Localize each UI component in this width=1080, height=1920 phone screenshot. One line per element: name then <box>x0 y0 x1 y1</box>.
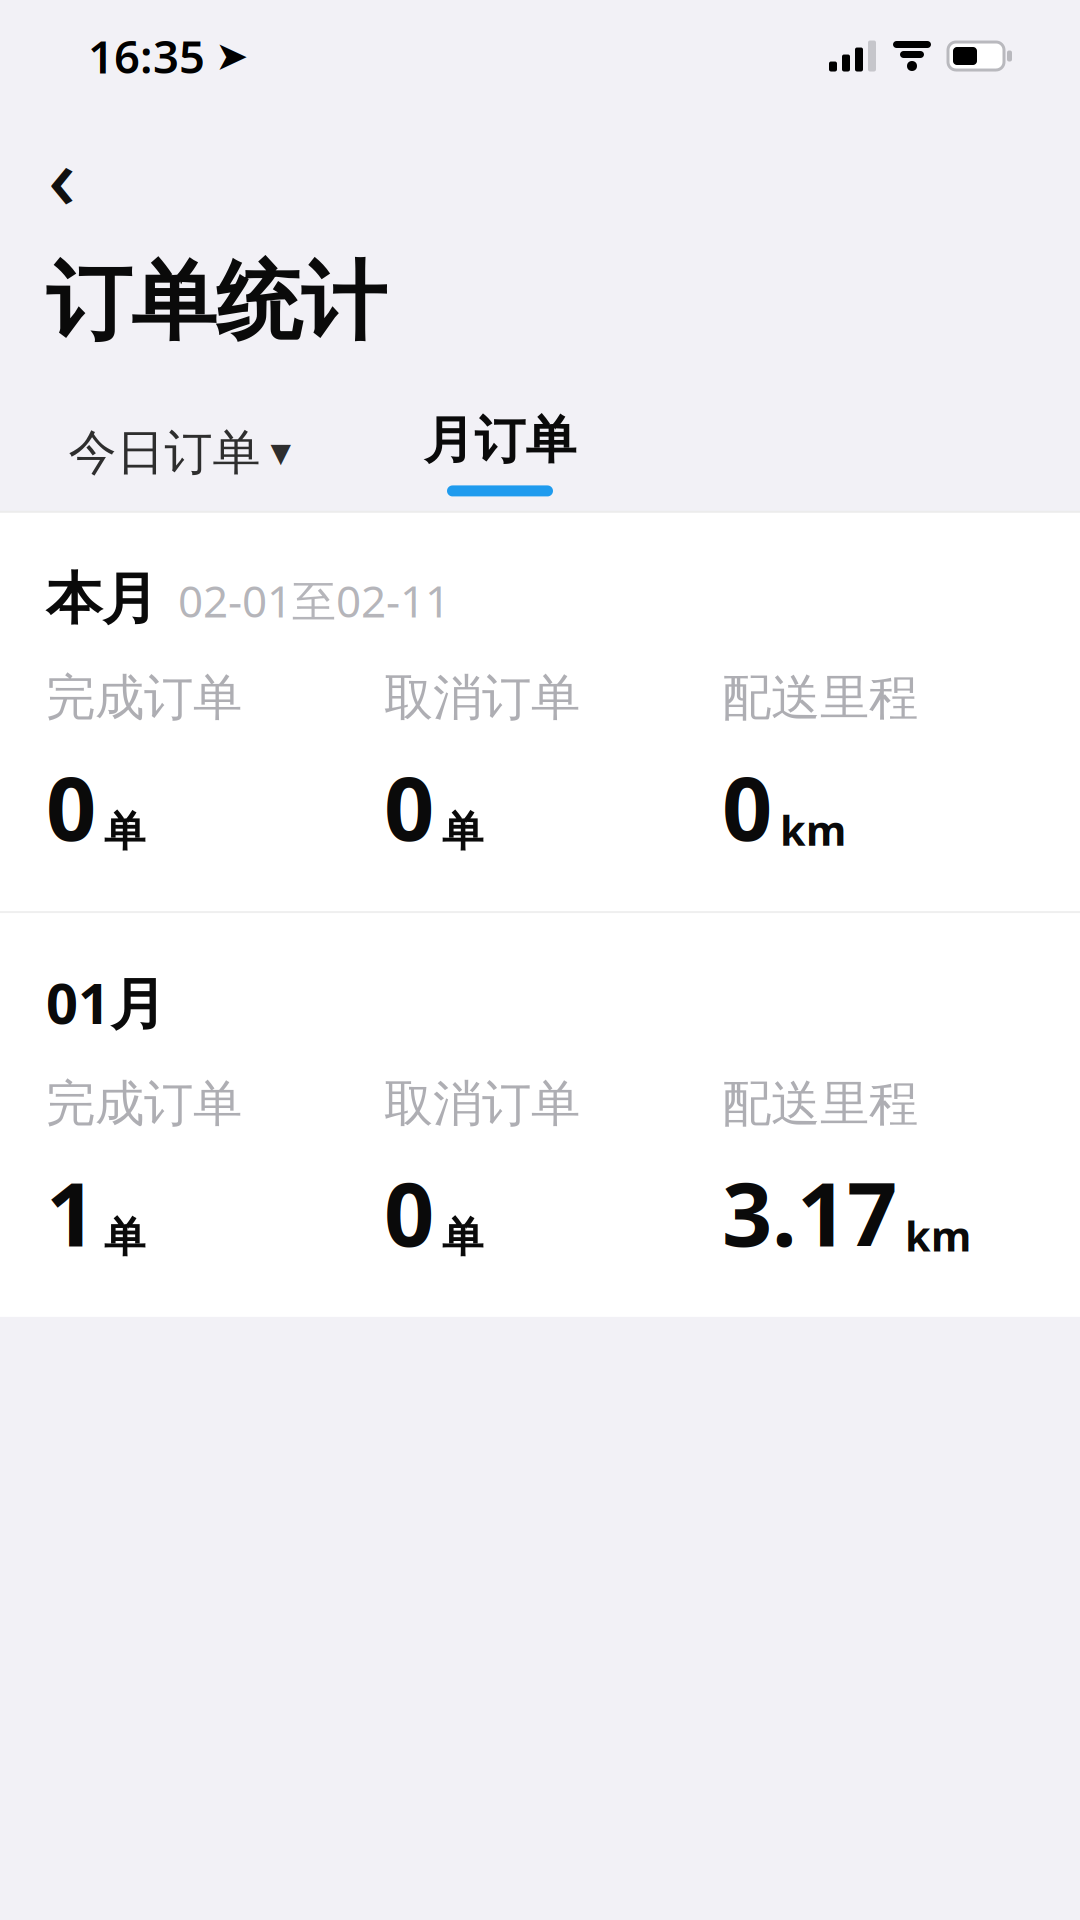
staticText: 01月 <box>46 965 166 1039</box>
staticText: 3.17 <box>722 1154 897 1271</box>
staticText: 02-01至02-11 <box>178 571 450 630</box>
staticText: 单 <box>104 806 145 857</box>
staticText: 今日订单 <box>68 423 260 482</box>
staticText: 单 <box>442 1212 483 1263</box>
staticText: 本月 <box>46 565 158 634</box>
button[interactable]: 月订单 <box>350 395 650 511</box>
button[interactable]: 今日订单 <box>10 395 350 511</box>
staticText: 0 <box>384 748 434 865</box>
staticText: 月订单 <box>423 409 576 471</box>
staticText: 0 <box>384 1154 434 1271</box>
staticText: 0 <box>46 748 96 865</box>
staticText: 订单统计 <box>46 250 386 355</box>
staticText: 0 <box>722 748 772 865</box>
staticText: 16:35 <box>88 26 205 86</box>
button[interactable]: Back <box>16 130 108 222</box>
staticText: ‹ <box>48 119 76 233</box>
staticText: 完成订单 <box>46 1073 242 1134</box>
staticText: 取消订单 <box>384 668 580 728</box>
staticText: 完成订单 <box>46 668 242 728</box>
staticText: 1 <box>46 1154 96 1271</box>
staticText: ➤ <box>215 33 249 79</box>
staticText: 取消订单 <box>384 1073 580 1134</box>
staticText: ▼ <box>270 438 291 468</box>
staticText: 配送里程 <box>722 668 918 728</box>
staticText: km <box>905 1208 971 1263</box>
staticText: 配送里程 <box>722 1073 918 1134</box>
staticText: 单 <box>104 1212 145 1263</box>
staticText: km <box>780 802 846 857</box>
staticText: 单 <box>442 806 483 857</box>
